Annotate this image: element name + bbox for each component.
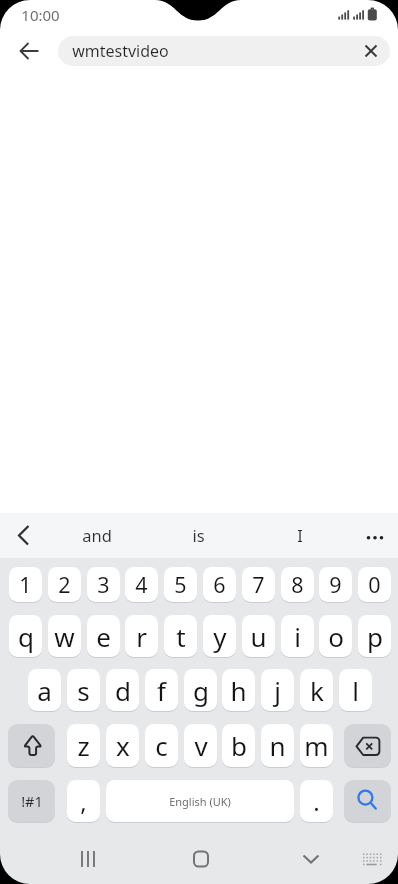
- staticText: 3: [97, 570, 110, 599]
- button[interactable]: 0: [358, 567, 391, 602]
- button[interactable]: English (UK): [106, 780, 294, 822]
- button[interactable]: [344, 780, 391, 822]
- staticText: l: [352, 673, 359, 708]
- staticText: 6: [213, 570, 226, 599]
- button[interactable]: h: [222, 669, 255, 711]
- button[interactable]: 9: [319, 567, 352, 602]
- button[interactable]: [4, 515, 44, 555]
- staticText: f: [157, 673, 166, 708]
- staticText: x: [116, 728, 130, 763]
- button[interactable]: [344, 724, 391, 767]
- staticText: t: [176, 619, 186, 654]
- button[interactable]: a: [28, 669, 61, 711]
- staticText: j: [274, 673, 281, 708]
- button[interactable]: p: [358, 615, 391, 657]
- staticText: b: [231, 728, 247, 763]
- button[interactable]: m: [300, 724, 333, 767]
- button[interactable]: I: [255, 514, 345, 556]
- button[interactable]: 4: [125, 567, 158, 602]
- button[interactable]: f: [145, 669, 178, 711]
- button[interactable]: 5: [164, 567, 197, 602]
- staticText: r: [136, 619, 147, 654]
- staticText: m: [304, 728, 329, 763]
- staticText: e: [96, 619, 111, 654]
- button[interactable]: y: [203, 615, 236, 657]
- button[interactable]: z: [67, 724, 100, 767]
- staticText: h: [230, 673, 247, 708]
- staticText: u: [250, 619, 267, 654]
- button[interactable]: [68, 842, 108, 876]
- staticText: q: [18, 619, 34, 654]
- button[interactable]: v: [184, 724, 217, 767]
- staticText: I: [297, 524, 303, 546]
- staticText: 8: [291, 570, 304, 599]
- staticText: y: [213, 619, 227, 654]
- staticText: p: [367, 619, 383, 654]
- button[interactable]: is: [153, 514, 243, 556]
- button[interactable]: [352, 842, 392, 876]
- staticText: .: [313, 785, 320, 818]
- button[interactable]: e: [87, 615, 120, 657]
- button[interactable]: [356, 515, 394, 555]
- button[interactable]: q: [9, 615, 42, 657]
- button[interactable]: wmtestvideo: [58, 36, 390, 66]
- button[interactable]: t: [164, 615, 197, 657]
- staticText: 1: [19, 570, 32, 599]
- button[interactable]: n: [261, 724, 294, 767]
- button[interactable]: [12, 36, 46, 66]
- button[interactable]: b: [222, 724, 255, 767]
- button[interactable]: s: [67, 669, 100, 711]
- staticText: !#1: [21, 791, 43, 811]
- staticText: 5: [174, 570, 187, 599]
- staticText: English (UK): [169, 794, 231, 809]
- staticText: w: [54, 619, 75, 654]
- staticText: ,: [80, 785, 87, 818]
- button[interactable]: k: [300, 669, 333, 711]
- button[interactable]: [352, 36, 390, 66]
- button[interactable]: [291, 842, 331, 876]
- button[interactable]: 7: [242, 567, 275, 602]
- button[interactable]: [8, 724, 55, 767]
- button[interactable]: w: [48, 615, 81, 657]
- staticText: z: [77, 728, 90, 763]
- staticText: s: [77, 673, 90, 708]
- staticText: 2: [58, 570, 71, 599]
- staticText: is: [192, 524, 205, 546]
- staticText: 10:00: [21, 5, 60, 25]
- button[interactable]: !#1: [8, 780, 55, 822]
- button[interactable]: and: [52, 514, 142, 556]
- button[interactable]: u: [242, 615, 275, 657]
- button[interactable]: j: [261, 669, 294, 711]
- button[interactable]: i: [281, 615, 314, 657]
- staticText: o: [328, 619, 344, 654]
- staticText: 7: [252, 570, 265, 599]
- staticText: a: [37, 673, 52, 708]
- button[interactable]: g: [184, 669, 217, 711]
- staticText: 0: [368, 570, 381, 599]
- staticText: g: [193, 673, 209, 708]
- staticText: i: [294, 619, 301, 654]
- button[interactable]: l: [339, 669, 372, 711]
- staticText: d: [115, 673, 131, 708]
- staticText: n: [269, 728, 286, 763]
- button[interactable]: 2: [48, 567, 81, 602]
- staticText: c: [155, 728, 168, 763]
- button[interactable]: d: [106, 669, 139, 711]
- staticText: 4: [135, 570, 148, 599]
- staticText: 9: [329, 570, 342, 599]
- staticText: and: [82, 524, 112, 546]
- button[interactable]: c: [145, 724, 178, 767]
- button[interactable]: [181, 842, 221, 876]
- staticText: k: [310, 673, 324, 708]
- staticText: wmtestvideo: [72, 40, 169, 62]
- button[interactable]: .: [300, 780, 333, 822]
- button[interactable]: 1: [9, 567, 42, 602]
- staticText: v: [194, 728, 208, 763]
- button[interactable]: x: [106, 724, 139, 767]
- button[interactable]: 3: [87, 567, 120, 602]
- button[interactable]: o: [319, 615, 352, 657]
- button[interactable]: ,: [67, 780, 100, 822]
- button[interactable]: 6: [203, 567, 236, 602]
- button[interactable]: 8: [281, 567, 314, 602]
- button[interactable]: r: [125, 615, 158, 657]
